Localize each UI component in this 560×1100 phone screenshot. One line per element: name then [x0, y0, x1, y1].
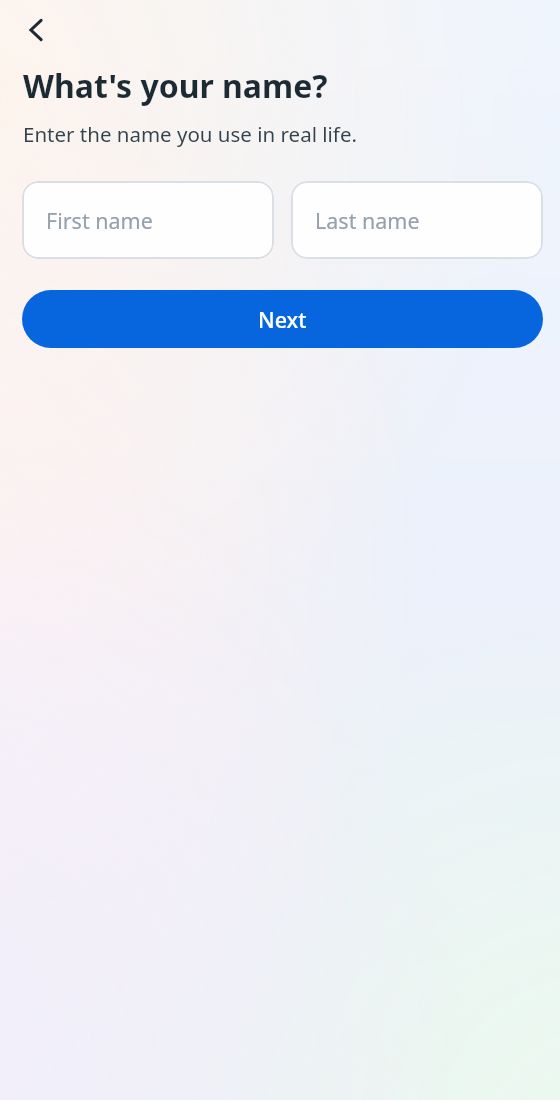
button[interactable]: First name	[22, 181, 274, 259]
staticText: Enter the name you use in real life.	[23, 120, 357, 148]
staticText: What's your name?	[23, 64, 328, 108]
button[interactable]	[16, 10, 56, 50]
staticText: Last name	[315, 206, 420, 235]
staticText: Next	[258, 305, 307, 334]
staticText: First name	[46, 206, 153, 235]
button[interactable]: Last name	[291, 181, 543, 259]
button[interactable]: Next	[22, 290, 543, 348]
